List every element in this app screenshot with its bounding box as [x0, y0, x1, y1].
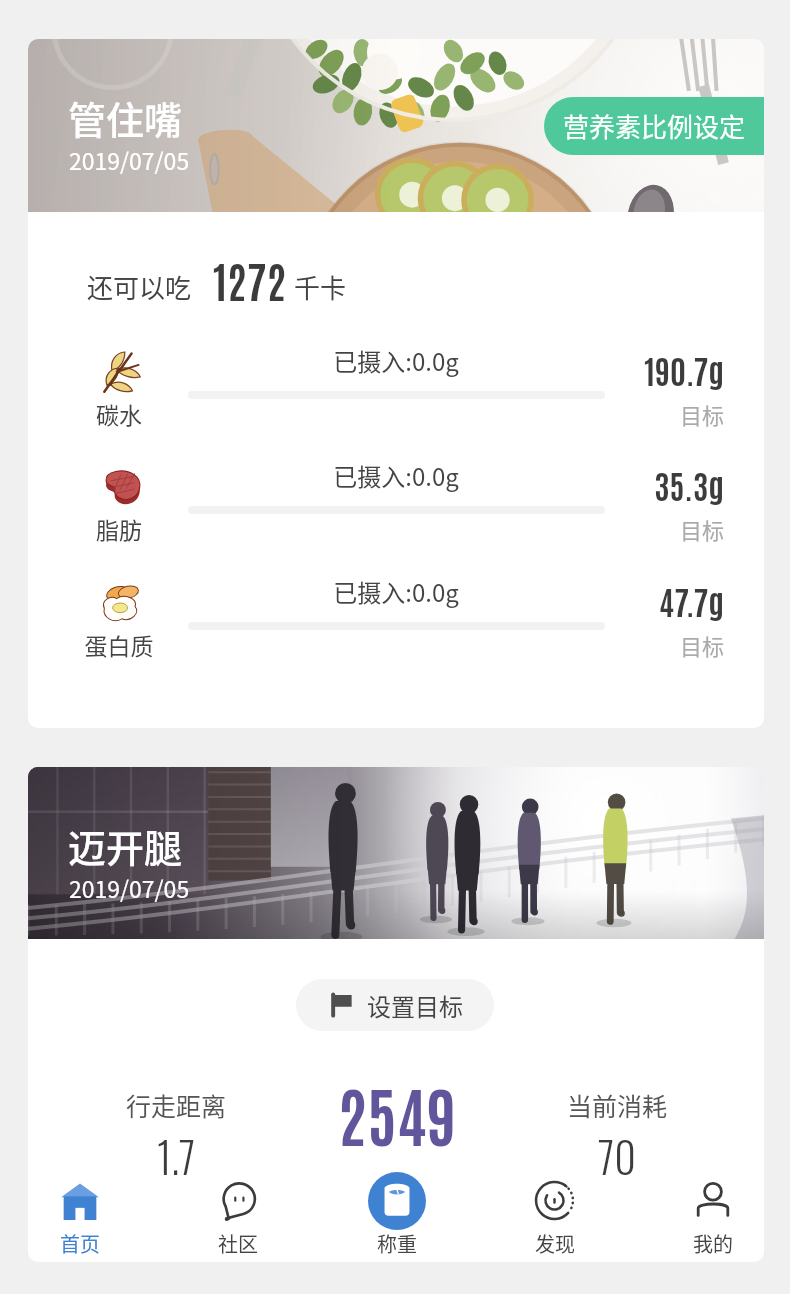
- staticText: 2549: [297, 1072, 497, 1155]
- button[interactable]: 设置目标: [296, 979, 494, 1031]
- staticText: 我的: [693, 1229, 733, 1258]
- staticText: 蛋白质: [59, 628, 179, 661]
- staticText: 当前消耗: [517, 1087, 717, 1123]
- staticText: 营养素比例设定: [563, 107, 746, 145]
- staticText: 管住嘴: [68, 90, 183, 145]
- staticText: 碳水: [59, 397, 179, 430]
- staticText: 70: [517, 1125, 717, 1187]
- staticText: 行走距离: [76, 1087, 276, 1123]
- staticText: 脂肪: [59, 512, 179, 545]
- staticText: 千卡: [294, 268, 347, 306]
- staticText: 发现: [535, 1229, 575, 1258]
- staticText: 已摄入:0.0g: [176, 343, 616, 378]
- staticText: 目标: [524, 513, 724, 545]
- staticText: 目标: [524, 629, 724, 661]
- staticText: 190.7g: [524, 348, 724, 390]
- button[interactable]: Home: [28, 1171, 131, 1262]
- staticText: 迈开腿: [68, 818, 183, 873]
- staticText: 2019/07/05: [69, 143, 190, 176]
- staticText: 社区: [218, 1229, 258, 1258]
- staticText: 47.7g: [524, 579, 724, 621]
- staticText: 还可以吃: [87, 268, 192, 306]
- staticText: 35.3g: [524, 463, 724, 505]
- staticText: 设置目标: [367, 988, 463, 1023]
- button[interactable]: Weigh in: [345, 1171, 448, 1262]
- button[interactable]: 营养素比例设定: [544, 97, 764, 155]
- button[interactable]: Profile: [661, 1171, 764, 1262]
- staticText: 1.7: [76, 1125, 276, 1187]
- staticText: 已摄入:0.0g: [176, 574, 616, 609]
- staticText: 2019/07/05: [69, 871, 190, 904]
- button[interactable]: Discover: [503, 1171, 606, 1262]
- staticText: 1272: [213, 252, 287, 307]
- button[interactable]: Community: [186, 1171, 289, 1262]
- staticText: 称重: [377, 1229, 417, 1258]
- staticText: 已摄入:0.0g: [176, 458, 616, 493]
- staticText: 目标: [524, 398, 724, 430]
- staticText: 首页: [60, 1229, 100, 1258]
